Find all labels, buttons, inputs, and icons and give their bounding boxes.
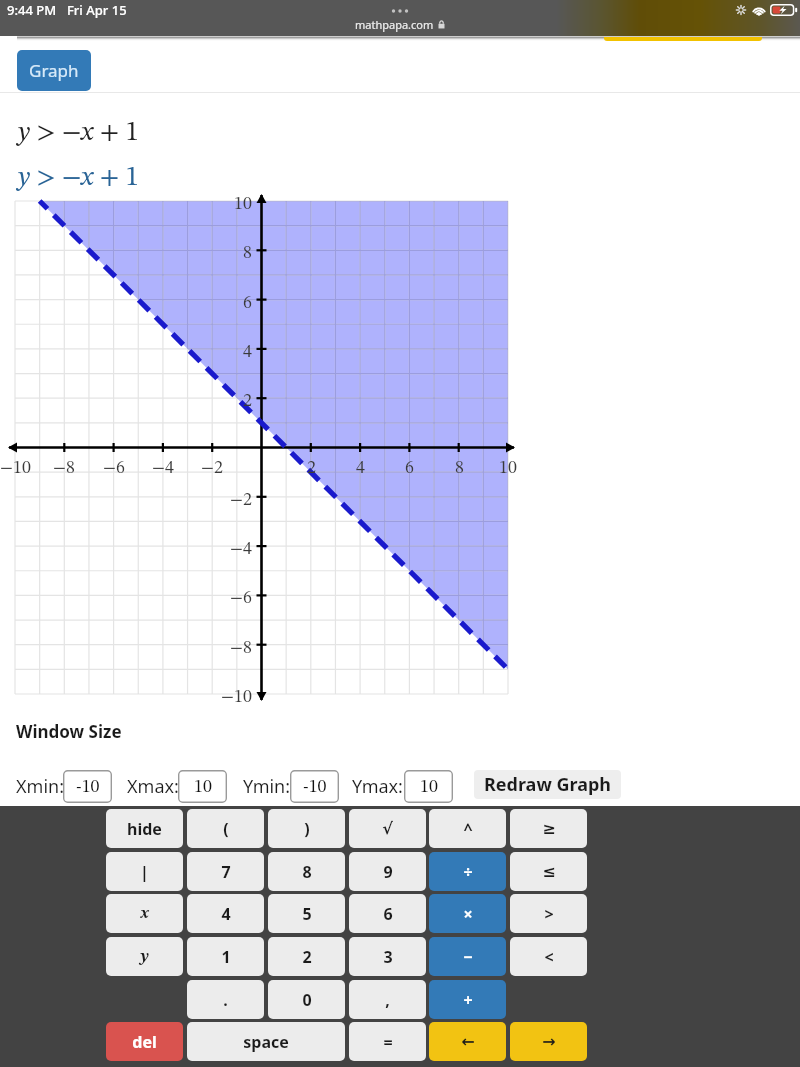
staticText: | [140, 861, 149, 883]
staticText: Fri Apr 15 [67, 1, 127, 19]
staticText: −8 [53, 459, 75, 477]
staticText: del [132, 1031, 157, 1053]
button[interactable]: -10 [63, 770, 112, 803]
staticText: 10 [234, 195, 252, 213]
button[interactable]: ) [268, 809, 345, 848]
button[interactable]: → [510, 1022, 587, 1061]
button[interactable]: ≤ [510, 852, 587, 891]
staticText: ) [304, 818, 310, 840]
staticText: ÷ [463, 861, 473, 883]
staticText: 0 [302, 989, 312, 1011]
button[interactable]: , [349, 980, 426, 1019]
staticText: 6 [243, 294, 252, 312]
staticText: = [383, 1031, 393, 1053]
button[interactable]: Redraw Graph [474, 770, 621, 799]
button[interactable]: space [187, 1022, 345, 1061]
staticText: -10 [303, 778, 327, 796]
button[interactable]: 0 [268, 980, 345, 1019]
button[interactable]: 8 [268, 852, 345, 891]
staticText: -10 [76, 778, 100, 796]
button[interactable]: . [187, 980, 264, 1019]
staticText: 9:44 PM [7, 1, 57, 19]
staticText: + [463, 989, 473, 1011]
staticText: −4 [152, 459, 174, 477]
staticText: Ymin: [243, 774, 291, 799]
button[interactable]: 6 [349, 894, 426, 933]
button[interactable]: √ [349, 809, 426, 848]
staticText: 2 [243, 392, 252, 410]
button[interactable]: ≥ [510, 809, 587, 848]
staticText: Graph [29, 59, 79, 82]
staticText: × [463, 903, 473, 925]
staticText: 4 [221, 903, 231, 925]
staticText: hide [127, 818, 162, 840]
button[interactable]: x [106, 894, 183, 933]
staticText: 5 [302, 903, 312, 925]
button[interactable]: -10 [290, 770, 339, 803]
button[interactable]: < [510, 937, 587, 976]
staticText: 10 [420, 778, 438, 796]
staticText: Ymax: [352, 774, 403, 799]
staticText: , [385, 989, 390, 1011]
staticText: 3 [383, 946, 393, 968]
button[interactable]: × [429, 894, 506, 933]
staticText: Window Size [16, 720, 122, 743]
staticText: 8 [455, 459, 464, 477]
button[interactable]: + [429, 980, 506, 1019]
button[interactable]: ( [187, 809, 264, 848]
staticText: 4 [243, 343, 252, 361]
staticText: x [140, 906, 149, 922]
staticText: 9 [383, 861, 393, 883]
button[interactable]: > [510, 894, 587, 933]
staticText: → [542, 1032, 556, 1051]
button[interactable]: del [106, 1022, 183, 1061]
staticText: 8 [243, 244, 252, 262]
staticText: y > −x + 1 [18, 164, 139, 191]
button[interactable]: 1 [187, 937, 264, 976]
button[interactable]: y [106, 937, 183, 976]
button[interactable]: 10 [178, 770, 227, 803]
button[interactable]: | [106, 852, 183, 891]
button[interactable]: − [429, 937, 506, 976]
staticText: mathpapa.com [355, 17, 434, 32]
button[interactable]: Graph [17, 50, 91, 91]
staticText: 7 [221, 861, 231, 883]
staticText: 10 [194, 778, 212, 796]
staticText: Xmin: [16, 774, 64, 799]
button[interactable]: 9 [349, 852, 426, 891]
button[interactable]: ← [429, 1022, 506, 1061]
staticText: −10 [0, 459, 31, 477]
button[interactable]: hide [106, 809, 183, 848]
staticText: Xmax: [127, 774, 179, 799]
staticText: ≥ [542, 819, 556, 838]
button[interactable]: = [349, 1022, 426, 1061]
staticText: 4 [356, 459, 365, 477]
staticText: √ [382, 819, 393, 838]
staticText: ^ [463, 818, 473, 840]
staticText: ← [461, 1032, 475, 1051]
staticText: 2 [307, 459, 316, 477]
staticText: 6 [383, 903, 393, 925]
staticText: 1 [221, 946, 231, 968]
button[interactable]: 2 [268, 937, 345, 976]
staticText: −6 [103, 459, 125, 477]
staticText: > [544, 903, 554, 925]
staticText: . [223, 989, 228, 1011]
button[interactable]: ^ [429, 809, 506, 848]
button[interactable]: 7 [187, 852, 264, 891]
staticText: − [463, 946, 473, 968]
staticText: y > −x + 1 [18, 119, 139, 146]
button[interactable]: 3 [349, 937, 426, 976]
staticText: ( [223, 818, 229, 840]
button[interactable]: 4 [187, 894, 264, 933]
staticText: 2 [302, 946, 312, 968]
button[interactable]: 10 [404, 770, 453, 803]
staticText: −2 [230, 491, 252, 509]
staticText: 10 [499, 459, 517, 477]
staticText: space [243, 1031, 289, 1053]
staticText: y [140, 949, 149, 965]
staticText: Redraw Graph [484, 772, 612, 797]
button[interactable]: ÷ [429, 852, 506, 891]
staticText: −6 [230, 589, 252, 607]
button[interactable]: 5 [268, 894, 345, 933]
